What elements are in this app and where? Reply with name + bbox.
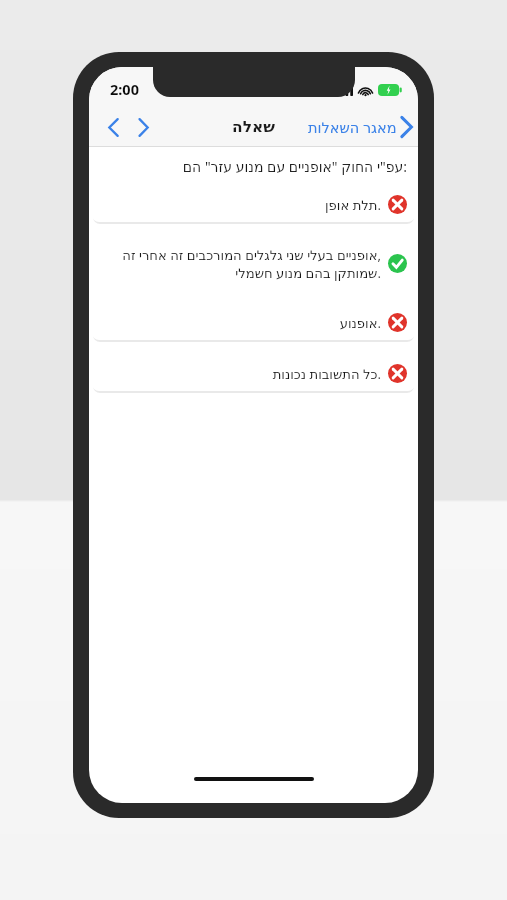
staticText: אופניים בעלי שני גלגלים המורכבים זה אחרי… <box>122 246 381 281</box>
button[interactable]: Previous <box>98 110 128 144</box>
staticText: מאגר השאלות <box>308 117 397 137</box>
staticText: כל התשובות נכונות. <box>272 365 381 383</box>
button[interactable]: מאגר השאלות <box>302 112 418 142</box>
staticText: עפ"י החוק "אופניים עם מנוע עזר" הם: <box>182 157 407 176</box>
staticText: 2:00 <box>110 79 139 99</box>
button[interactable]: תלת אופן. <box>92 187 415 222</box>
button[interactable]: כל התשובות נכונות. <box>92 356 415 391</box>
staticText: שאלה <box>232 118 276 136</box>
staticText: אופנוע. <box>339 314 381 332</box>
staticText: תלת אופן. <box>324 196 381 214</box>
button[interactable]: אופניים בעלי שני גלגלים המורכבים זה אחרי… <box>92 238 415 289</box>
button[interactable]: אופנוע. <box>92 305 415 340</box>
button[interactable]: Next <box>128 110 158 144</box>
